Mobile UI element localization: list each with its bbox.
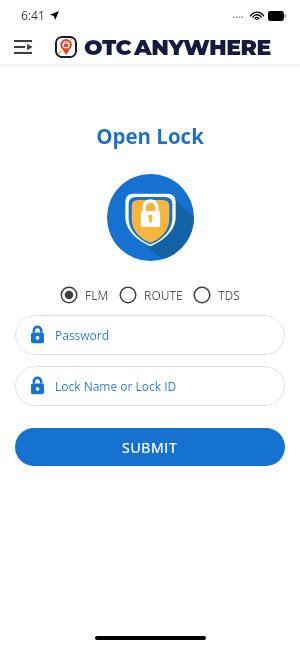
staticText: SUBMIT — [122, 438, 178, 457]
button[interactable]: SUBMIT — [15, 428, 285, 466]
staticText: OTC ANYWHERE — [84, 34, 271, 61]
button[interactable]: Password — [15, 315, 285, 355]
staticText: Open Lock — [0, 122, 300, 150]
button[interactable]: ROUTE — [119, 286, 183, 304]
staticText: TDS — [218, 287, 240, 303]
staticText: FLM — [85, 287, 109, 303]
staticText: 6:41 — [21, 7, 45, 23]
button[interactable]: FLM — [60, 286, 109, 304]
staticText: Password — [55, 327, 110, 343]
button[interactable]: Menu — [5, 30, 41, 64]
staticText: Lock Name or Lock ID — [55, 378, 177, 394]
button[interactable]: Lock Name or Lock ID — [15, 366, 285, 406]
button[interactable]: TDS — [193, 286, 240, 304]
staticText: ROUTE — [144, 287, 183, 303]
